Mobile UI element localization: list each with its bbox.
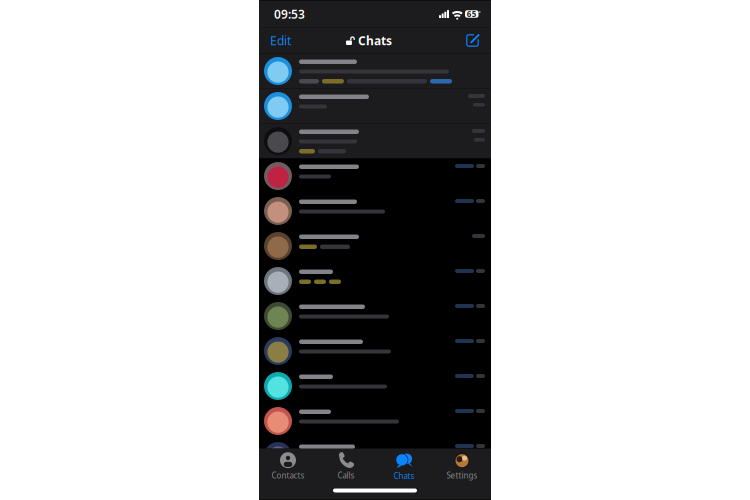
button[interactable] (259, 403, 491, 438)
staticText: 09:53 (274, 6, 305, 22)
staticText: Edit (270, 32, 291, 48)
button[interactable] (259, 53, 491, 88)
button[interactable]: Contacts (259, 450, 317, 482)
button[interactable] (259, 228, 491, 263)
button[interactable] (259, 333, 491, 368)
button[interactable]: Calls (317, 450, 375, 482)
button[interactable] (259, 88, 491, 123)
button[interactable] (259, 123, 491, 158)
button[interactable] (259, 368, 491, 403)
button[interactable] (259, 193, 491, 228)
staticText: Chats (393, 471, 414, 481)
button[interactable] (259, 263, 491, 298)
button[interactable]: Settings (433, 450, 491, 482)
button[interactable]: New chat (459, 29, 486, 52)
button[interactable] (259, 158, 491, 193)
button[interactable] (259, 298, 491, 333)
button[interactable] (259, 438, 491, 473)
staticText: Settings (446, 470, 477, 481)
staticText: 65 (467, 9, 477, 19)
staticText: Contacts (271, 470, 304, 481)
button[interactable]: Edit (264, 27, 297, 53)
staticText: Chats (358, 32, 392, 48)
staticText: Calls (337, 470, 354, 481)
button[interactable]: Chats (375, 450, 433, 482)
